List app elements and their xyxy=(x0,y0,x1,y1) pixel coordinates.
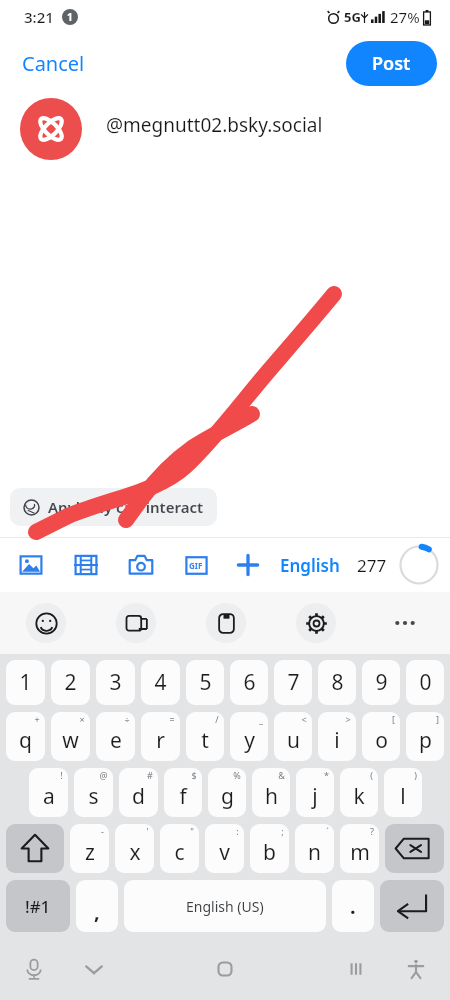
button[interactable]: × xyxy=(51,712,90,761)
button[interactable]: < xyxy=(274,712,312,761)
button[interactable]: English xyxy=(276,550,344,581)
button[interactable]: Add image xyxy=(16,550,46,580)
button[interactable]: 2 xyxy=(51,660,90,705)
staticText: t xyxy=(201,726,209,755)
button[interactable]: Hide keyboard xyxy=(74,949,114,989)
staticText: 277 xyxy=(357,554,387,577)
button[interactable]: Anybody can interact xyxy=(10,488,217,526)
staticText: 8 xyxy=(331,668,344,697)
button[interactable]: ! xyxy=(29,768,68,817)
staticText: g xyxy=(221,782,234,811)
staticText: j xyxy=(312,782,318,811)
button[interactable]: Post xyxy=(346,41,437,86)
button[interactable]: ? xyxy=(340,824,379,873)
button[interactable]: ´ xyxy=(295,824,334,873)
button[interactable]: 1 xyxy=(6,660,45,705)
staticText: @ xyxy=(99,769,108,781)
button[interactable]: ' xyxy=(115,824,154,873)
button[interactable]: 0 xyxy=(406,660,444,705)
staticText: [ xyxy=(392,713,395,725)
button[interactable]: 3 xyxy=(96,660,135,705)
button[interactable]: Add GIF xyxy=(181,550,211,580)
button[interactable]: Shift xyxy=(6,824,64,873)
button[interactable]: % xyxy=(208,768,246,817)
staticText: ; xyxy=(281,825,284,837)
staticText: Anybody can interact xyxy=(48,497,204,517)
staticText: 2 xyxy=(64,668,77,697)
staticText: = xyxy=(169,713,175,725)
staticText: ´ xyxy=(326,825,329,837)
staticText: u xyxy=(287,726,300,755)
button[interactable]: / xyxy=(186,712,224,761)
button[interactable]: Add more xyxy=(233,550,263,580)
button[interactable]: Keyboard settings xyxy=(296,603,336,643)
staticText: m xyxy=(350,838,370,867)
staticText: Cancel xyxy=(22,50,85,77)
staticText: > xyxy=(345,713,351,725)
staticText: b xyxy=(263,838,276,867)
button[interactable]: 8 xyxy=(318,660,356,705)
button[interactable]: @ xyxy=(74,768,113,817)
button[interactable]: Accessibility xyxy=(396,949,436,989)
button[interactable]: English (US) xyxy=(124,880,326,932)
staticText: n xyxy=(308,838,321,867)
button[interactable]: " xyxy=(160,824,199,873)
staticText: , xyxy=(94,898,100,925)
button[interactable]: > xyxy=(318,712,356,761)
staticText: ( xyxy=(370,769,373,781)
button[interactable]: - xyxy=(70,824,109,873)
button[interactable]: + xyxy=(6,712,45,761)
button[interactable]: . xyxy=(332,880,374,932)
staticText: 4 xyxy=(154,668,167,697)
button[interactable]: 5 xyxy=(186,660,224,705)
staticText: f xyxy=(179,782,187,811)
button[interactable]: Voice input xyxy=(14,949,54,989)
button[interactable]: 6 xyxy=(230,660,268,705)
staticText: ' xyxy=(146,825,149,837)
staticText: 1 xyxy=(19,668,32,697)
button[interactable]: ; xyxy=(250,824,289,873)
staticText: 1 xyxy=(67,10,73,24)
button[interactable]: ÷ xyxy=(96,712,135,761)
staticText: % xyxy=(233,769,241,781)
button[interactable]: Take photo xyxy=(126,550,156,580)
button[interactable]: Add video xyxy=(71,550,101,580)
button[interactable]: Enter xyxy=(380,880,444,932)
button[interactable]: 9 xyxy=(362,660,400,705)
button[interactable]: _ xyxy=(230,712,268,761)
staticText: c xyxy=(174,838,185,867)
staticText: . xyxy=(350,893,356,920)
button[interactable]: Emoji xyxy=(26,603,66,643)
button[interactable]: # xyxy=(119,768,158,817)
button[interactable]: Recent apps xyxy=(336,949,376,989)
staticText: y xyxy=(244,726,255,755)
button[interactable]: : xyxy=(205,824,244,873)
button[interactable]: & xyxy=(252,768,290,817)
staticText: ÷ xyxy=(124,713,130,725)
button[interactable]: = xyxy=(141,712,180,761)
button[interactable]: $ xyxy=(164,768,202,817)
button[interactable]: Clipboard xyxy=(206,603,246,643)
button[interactable]: * xyxy=(296,768,334,817)
button[interactable]: 4 xyxy=(141,660,180,705)
button[interactable]: More keyboard options xyxy=(386,604,424,642)
button[interactable]: Profile avatar xyxy=(20,98,82,160)
button[interactable]: 7 xyxy=(274,660,312,705)
button[interactable]: ) xyxy=(384,768,422,817)
button[interactable]: Cancel xyxy=(8,42,99,85)
button[interactable]: Backspace xyxy=(385,824,444,873)
staticText: 27% xyxy=(390,7,420,27)
button[interactable]: ( xyxy=(340,768,378,817)
staticText: English xyxy=(280,554,340,577)
staticText: GIF xyxy=(189,560,203,571)
button[interactable]: Translate xyxy=(116,603,156,643)
staticText: ] xyxy=(436,713,439,725)
staticText: s xyxy=(88,782,99,811)
button[interactable]: !#1 xyxy=(6,880,70,932)
button[interactable]: , xyxy=(76,880,118,932)
button[interactable]: ] xyxy=(406,712,444,761)
button[interactable]: [ xyxy=(362,712,400,761)
staticText: ? xyxy=(370,825,374,837)
button[interactable]: Home xyxy=(205,949,245,989)
staticText: - xyxy=(101,825,104,837)
